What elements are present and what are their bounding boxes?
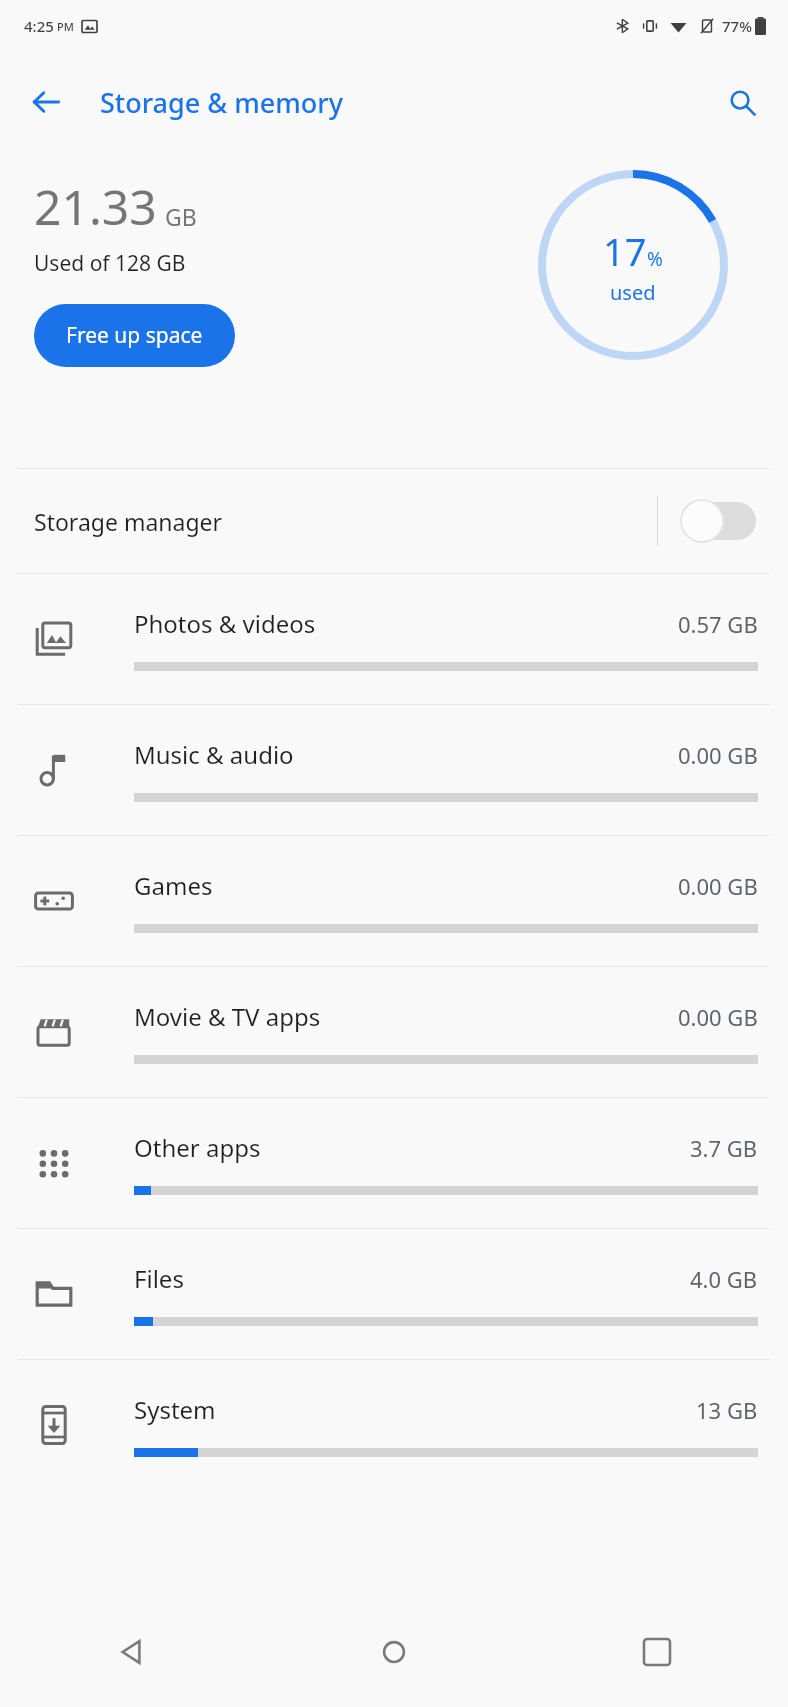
staticText: 0.57 GB	[678, 609, 758, 639]
button[interactable]: Files	[0, 1229, 788, 1359]
staticText: Files	[134, 1262, 690, 1295]
staticText: 13 GB	[696, 1395, 758, 1425]
staticText: used	[610, 279, 656, 306]
staticText: 3.7 GB	[690, 1133, 758, 1163]
staticText: Other apps	[134, 1131, 690, 1164]
staticText: Photos & videos	[134, 607, 678, 640]
staticText: 21.33	[34, 174, 157, 239]
staticText: GB	[165, 201, 197, 232]
staticText: Storage manager	[34, 506, 657, 537]
staticText: 77%	[722, 16, 752, 36]
button[interactable]: Search	[716, 76, 768, 128]
button[interactable]: Storage manager	[0, 469, 788, 573]
button[interactable]: System	[0, 1360, 788, 1490]
staticText: 0.00 GB	[678, 871, 758, 901]
staticText: %	[647, 246, 663, 272]
staticText: Movie & TV apps	[134, 1000, 678, 1033]
staticText: 17	[603, 225, 647, 277]
staticText: Storage & memory	[100, 84, 343, 121]
staticText: 4:25	[24, 16, 54, 36]
staticText: PM	[57, 19, 74, 34]
staticText: Music & audio	[134, 738, 678, 771]
button[interactable]: Free up space	[34, 304, 235, 367]
staticText: System	[134, 1393, 696, 1426]
staticText: 0.00 GB	[678, 1002, 758, 1032]
button[interactable]: Home	[262, 1597, 525, 1707]
staticText: Used of 128 GB	[34, 249, 186, 278]
button[interactable]: Games	[0, 836, 788, 966]
staticText: Games	[134, 869, 678, 902]
staticText: 4.0 GB	[690, 1264, 758, 1294]
button[interactable]: Back	[0, 1597, 262, 1707]
button[interactable]: Back	[20, 76, 72, 128]
button[interactable]: Music & audio	[0, 705, 788, 835]
staticText: 0.00 GB	[678, 740, 758, 770]
button[interactable]: Storage manager toggle	[680, 499, 756, 543]
button[interactable]: Photos & videos	[0, 574, 788, 704]
button[interactable]: Other apps	[0, 1098, 788, 1228]
button[interactable]: Recent apps	[525, 1597, 788, 1707]
button[interactable]: Movie & TV apps	[0, 967, 788, 1097]
staticText: Free up space	[66, 321, 203, 350]
